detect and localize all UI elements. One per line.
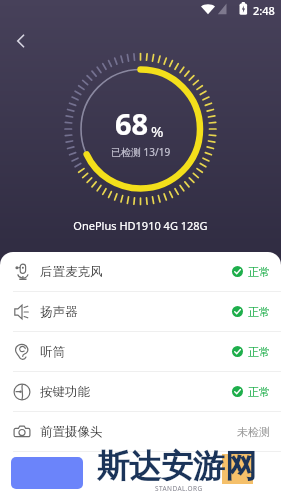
- button[interactable]: 前置摄像头: [0, 412, 281, 451]
- staticText: 正常: [248, 385, 270, 399]
- staticText: 正常: [248, 265, 270, 279]
- staticText: 前置摄像头: [40, 424, 103, 440]
- button[interactable]: 后置麦克风: [0, 252, 281, 291]
- staticText: STANDAL.ORG: [155, 484, 203, 493]
- staticText: 未检测: [237, 425, 270, 439]
- button[interactable]: 按键功能: [0, 372, 281, 411]
- staticText: 2:48: [253, 3, 275, 18]
- button[interactable]: Back: [6, 26, 36, 56]
- button[interactable]: 听筒: [0, 332, 281, 371]
- staticText: 68: [115, 104, 149, 143]
- staticText: 听筒: [40, 344, 65, 360]
- button[interactable]: 扬声器: [0, 292, 281, 331]
- staticText: 按键功能: [40, 384, 90, 400]
- staticText: 斯达安游网: [97, 446, 257, 486]
- staticText: 已检测 13/19: [0, 145, 281, 159]
- staticText: %: [151, 121, 164, 141]
- staticText: OnePlus HD1910 4G 128G: [0, 218, 281, 233]
- staticText: 扬声器: [40, 304, 78, 320]
- staticText: 正常: [248, 305, 270, 319]
- staticText: 后置麦克风: [40, 264, 103, 280]
- staticText: 正常: [248, 345, 270, 359]
